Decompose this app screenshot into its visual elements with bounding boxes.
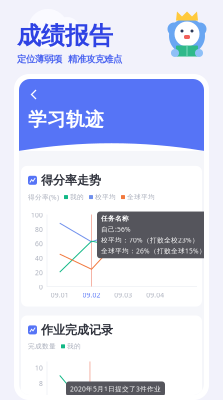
- staticText: 09.04: [146, 290, 164, 299]
- button[interactable]: Back: [28, 87, 40, 102]
- staticText: 09.02: [82, 290, 100, 299]
- staticText: 我的: [70, 193, 84, 201]
- staticText: 100: [31, 210, 43, 219]
- staticText: 任务名称: [101, 214, 129, 223]
- staticText: 全球平均：26%（打败全球15%）: [101, 246, 206, 255]
- staticText: 自己:56%: [101, 225, 131, 234]
- staticText: 全球平均: [127, 193, 155, 201]
- staticText: 校平均: [95, 193, 116, 201]
- staticText: 我的: [67, 342, 81, 350]
- staticText: 80: [35, 225, 43, 234]
- staticText: 40: [35, 254, 43, 263]
- staticText: 定位薄弱项 精准攻克难点: [17, 53, 122, 65]
- staticText: 学习轨迹: [28, 108, 104, 131]
- staticText: 得分率(%): [28, 193, 59, 202]
- staticText: 2020年5月1日提交了3件作业: [70, 384, 161, 393]
- staticText: 完成数量: [28, 342, 56, 350]
- staticText: 0: [39, 282, 43, 291]
- staticText: 成绩报告: [17, 21, 113, 50]
- staticText: 10: [35, 363, 43, 372]
- staticText: 20: [35, 268, 43, 277]
- staticText: 09.01: [51, 290, 69, 299]
- staticText: 09.03: [114, 290, 132, 299]
- staticText: 60: [35, 239, 43, 248]
- staticText: 8: [39, 379, 43, 388]
- staticText: 作业完成记录: [41, 322, 113, 337]
- staticText: 校平均：70%（打败全校23%）: [101, 236, 199, 244]
- staticText: 得分率走势: [41, 173, 101, 188]
